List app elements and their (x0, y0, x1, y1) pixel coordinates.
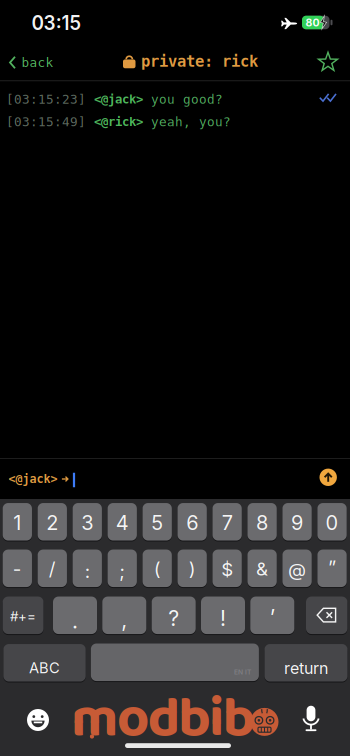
button[interactable]: Space (91, 643, 259, 682)
button[interactable]: 3 (73, 502, 102, 541)
button[interactable]: $ (212, 549, 242, 587)
button[interactable]: back (5, 47, 57, 77)
button[interactable]: Delete (306, 596, 347, 634)
button[interactable]: ABC (3, 643, 86, 682)
staticText: ! (220, 605, 226, 631)
staticText: : (85, 560, 90, 583)
staticText: 03:15 (31, 11, 81, 34)
staticText: . (72, 608, 78, 634)
staticText: & (256, 557, 268, 580)
button[interactable]: . (53, 596, 97, 634)
button[interactable]: 2 (38, 502, 67, 541)
staticText: EN IT (234, 668, 251, 676)
button[interactable]: Send (319, 469, 337, 486)
staticText: private: rick (141, 52, 258, 70)
staticText: #+= (10, 608, 36, 624)
staticText: yeah, you? (143, 114, 231, 129)
button[interactable]: @ (282, 549, 312, 587)
staticText: 5 (151, 511, 163, 535)
button[interactable]: ” (317, 549, 347, 587)
staticText: , (121, 606, 127, 632)
staticText: [03:15:23] (6, 92, 94, 107)
button[interactable]: - (3, 549, 32, 587)
button[interactable]: 0 (317, 502, 347, 541)
button[interactable]: 1 (3, 502, 32, 541)
button[interactable]: 9 (282, 502, 312, 541)
button[interactable]: 5 (143, 502, 172, 541)
staticText: back (21, 55, 53, 70)
button[interactable]: Favorite (313, 47, 343, 77)
button[interactable]: 7 (212, 502, 242, 541)
staticText: return (284, 659, 328, 678)
button[interactable]: 8 (247, 502, 277, 541)
staticText: 80 (305, 16, 319, 29)
staticText: / (49, 557, 56, 580)
staticText: ’ (270, 604, 275, 630)
staticText: 9 (291, 511, 303, 535)
button[interactable]: : (73, 549, 102, 587)
staticText: @ (288, 558, 306, 581)
button[interactable]: #+= (3, 596, 43, 634)
staticText: 3 (81, 511, 93, 535)
staticText: $ (221, 558, 233, 581)
staticText: ” (328, 555, 336, 578)
staticText: <@jack> (94, 92, 143, 106)
staticText: 6 (186, 511, 198, 535)
button[interactable]: return (264, 643, 347, 682)
staticText: modbib (71, 675, 255, 756)
button[interactable]: ’ (250, 596, 294, 634)
button[interactable]: ! (201, 596, 245, 634)
button[interactable]: ( (143, 549, 172, 587)
staticText: ; (119, 560, 125, 583)
staticText: you good? (143, 92, 223, 107)
staticText: 0 (326, 511, 339, 535)
staticText: ( (154, 558, 161, 581)
staticText: 7 (222, 511, 233, 535)
button[interactable]: ; (108, 549, 137, 587)
button[interactable]: 6 (177, 502, 207, 541)
staticText: <@jack> (8, 472, 57, 486)
button[interactable]: 4 (108, 502, 137, 541)
button[interactable]: , (102, 596, 146, 634)
staticText: ) (189, 558, 196, 581)
staticText: 2 (46, 511, 58, 535)
staticText: 4 (116, 511, 129, 535)
staticText: ABC (29, 659, 60, 677)
button[interactable]: Emoji (26, 708, 50, 732)
staticText: ? (168, 605, 179, 631)
staticText: - (13, 557, 22, 580)
button[interactable]: & (247, 549, 277, 587)
button[interactable]: / (38, 549, 67, 587)
button[interactable]: Dictation (301, 704, 321, 732)
staticText: [03:15:49] (6, 114, 94, 129)
button[interactable]: ? (152, 596, 196, 634)
staticText: 8 (256, 511, 268, 535)
button[interactable]: ) (177, 549, 207, 587)
staticText: 1 (13, 511, 21, 535)
staticText: <@rick> (94, 115, 143, 129)
